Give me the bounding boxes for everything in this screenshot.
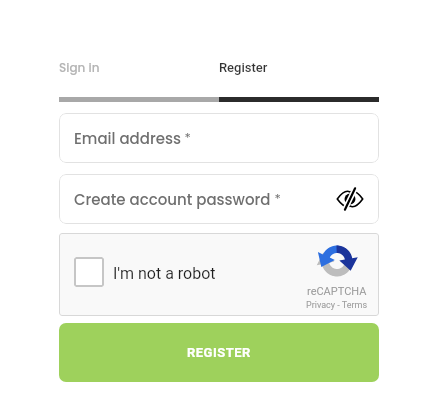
button[interactable]: Show password [334,183,366,215]
staticText: Create account password [74,189,271,210]
staticText: Privacy - Terms [306,300,368,311]
button[interactable]: Create account password [59,174,379,224]
staticText: reCAPTCHA [307,285,367,298]
button[interactable]: REGISTER [59,323,379,382]
staticText: Sign in [59,59,100,76]
staticText: Email address [74,128,181,149]
button[interactable]: Sign in [59,54,219,80]
button[interactable]: Email address [59,113,379,163]
button[interactable]: I'm not a robot checkbox [74,257,104,287]
staticText: * [271,189,281,207]
staticText: REGISTER [187,345,251,360]
staticText: * [181,128,191,146]
button[interactable]: Register [219,54,379,80]
staticText: Register [219,60,268,75]
staticText: I'm not a robot [113,264,216,283]
